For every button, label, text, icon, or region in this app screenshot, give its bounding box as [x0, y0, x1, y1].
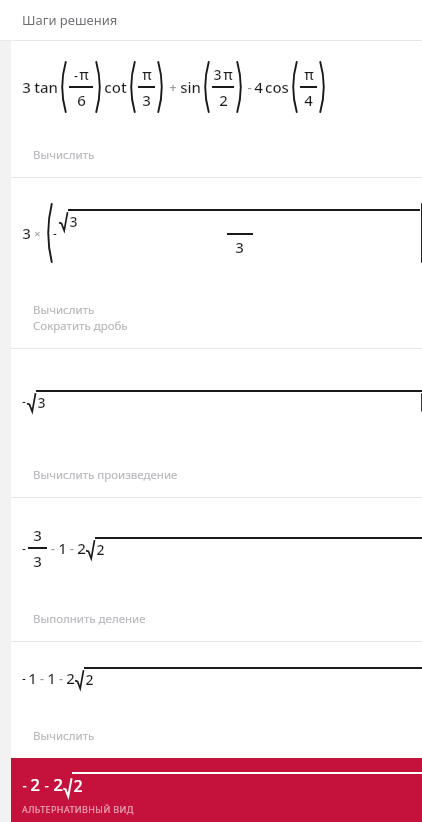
staticText: Вычислить произведение — [33, 467, 178, 483]
staticText: Вычислить — [33, 302, 95, 318]
staticText: Сократить дробь — [33, 318, 128, 334]
staticText: - — [22, 393, 26, 409]
staticText: π — [79, 65, 89, 84]
staticText: 3 — [69, 212, 78, 231]
staticText: 1 — [28, 668, 37, 688]
button[interactable]: 3 — [11, 178, 422, 288]
staticText: АЛЬТЕРНАТИВНЫЙ ВИД — [22, 803, 134, 815]
staticText: 2 — [73, 775, 83, 797]
staticText: 2 — [96, 540, 105, 559]
staticText: - — [22, 540, 26, 556]
staticText: - — [51, 540, 55, 556]
staticText: 3 — [142, 90, 151, 110]
staticText: 3 — [22, 223, 31, 243]
staticText: 2 — [30, 773, 40, 796]
staticText: × — [34, 226, 41, 241]
staticText: - — [53, 225, 57, 241]
staticText: Вычислить — [33, 147, 95, 163]
staticText: 4 — [254, 77, 263, 97]
staticText: - — [247, 78, 252, 96]
staticText: 6 — [77, 90, 86, 110]
button[interactable]: - — [11, 758, 422, 822]
staticText: tan — [34, 77, 58, 97]
staticText: cos — [265, 77, 289, 97]
button[interactable]: - — [11, 498, 422, 597]
staticText: + — [169, 78, 177, 96]
staticText: Вычислить — [33, 728, 95, 744]
staticText: - — [22, 776, 27, 794]
staticText: π — [304, 65, 314, 84]
staticText: 2 — [66, 668, 75, 688]
staticText: - — [40, 670, 44, 686]
staticText: Выполнить деление — [33, 611, 146, 627]
staticText: 3 — [22, 77, 31, 97]
staticText: 3 — [235, 237, 244, 257]
staticText: - — [70, 540, 74, 556]
staticText: 2 — [77, 538, 86, 558]
button[interactable]: - — [11, 349, 422, 453]
staticText: sin — [180, 77, 201, 97]
button[interactable]: 3 — [11, 41, 422, 133]
staticText: 1 — [47, 668, 56, 688]
button[interactable]: - — [11, 642, 422, 714]
staticText: 4 — [304, 90, 313, 110]
staticText: 3 — [33, 525, 42, 545]
staticText: 2 — [219, 90, 228, 110]
staticText: 2 — [85, 670, 94, 689]
staticText: - — [59, 670, 63, 686]
staticText: π — [142, 65, 152, 84]
staticText: 2 — [53, 773, 63, 796]
staticText: 1 — [58, 538, 67, 558]
staticText: - — [44, 776, 49, 794]
staticText: cot — [104, 77, 127, 97]
staticText: 3 — [37, 393, 46, 412]
staticText: 3 — [213, 65, 222, 84]
staticText: - — [22, 670, 26, 686]
staticText: π — [223, 65, 233, 84]
staticText: Шаги решения — [22, 11, 118, 29]
button[interactable]: Шаги решения — [0, 0, 422, 40]
staticText: 3 — [33, 551, 42, 571]
staticText: - — [74, 67, 78, 83]
